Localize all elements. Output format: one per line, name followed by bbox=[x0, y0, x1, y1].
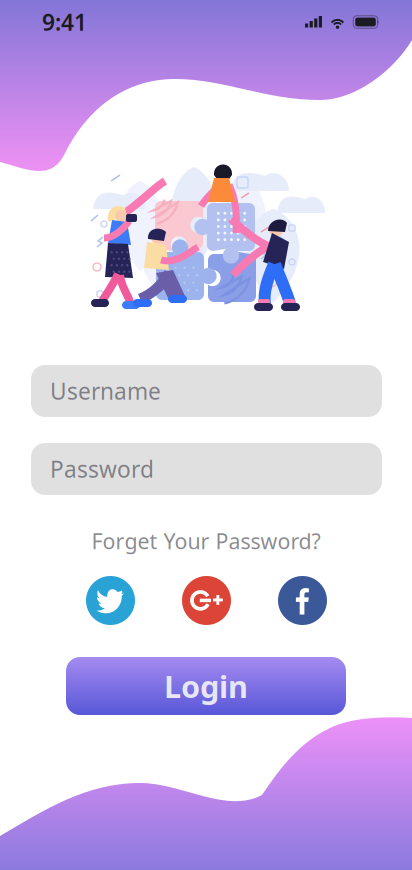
button[interactable]: Login bbox=[66, 657, 346, 715]
button[interactable]: Sign in with Facebook bbox=[278, 576, 327, 625]
staticText: Login bbox=[164, 666, 248, 706]
staticText: Username bbox=[50, 376, 161, 406]
button[interactable]: Username bbox=[31, 365, 382, 417]
staticText: Forget Your Password? bbox=[91, 527, 320, 555]
button[interactable]: Sign in with Twitter bbox=[86, 576, 135, 625]
button[interactable]: Password bbox=[31, 443, 382, 495]
button[interactable]: Sign in with Google Plus bbox=[182, 576, 231, 625]
staticText: Password bbox=[50, 454, 154, 484]
button[interactable]: Forget Your Password? bbox=[86, 529, 326, 553]
staticText: 9:41 bbox=[42, 7, 87, 37]
